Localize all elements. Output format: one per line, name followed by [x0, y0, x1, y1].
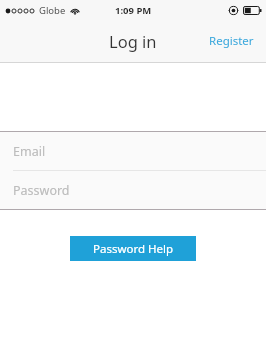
staticText: Globe: [39, 4, 66, 17]
staticText: Password Help: [93, 241, 174, 257]
button[interactable]: Password: [0, 171, 266, 209]
button[interactable]: Log in: [103, 28, 163, 54]
staticText: Email: [13, 143, 46, 160]
button[interactable]: Password Help: [70, 236, 196, 261]
staticText: Log in: [109, 30, 157, 52]
button[interactable]: Email: [0, 132, 266, 170]
staticText: 1:09 PM: [115, 4, 152, 17]
staticText: Register: [209, 33, 254, 49]
staticText: Password: [13, 182, 70, 199]
button[interactable]: Register: [197, 27, 266, 55]
